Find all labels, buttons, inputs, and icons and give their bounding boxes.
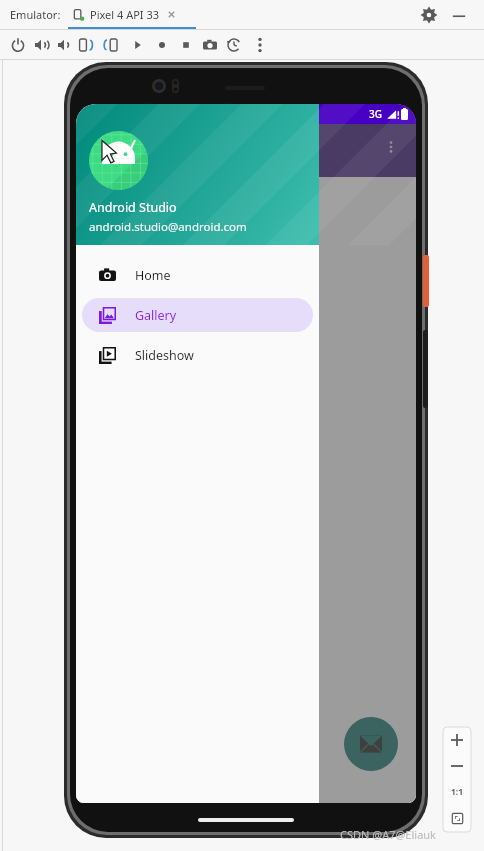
button[interactable]: Emulator control [8,35,28,55]
staticText: Gallery [135,307,177,324]
button[interactable]: Emulator control [176,35,196,55]
staticText: 3G [369,107,382,121]
other: Close tab [167,10,176,19]
button[interactable]: Emulator control [128,35,148,55]
button[interactable]: 1:1 [443,779,471,805]
button[interactable]: Emulator control [54,35,74,55]
button[interactable]: Minimize [448,4,470,26]
staticText: Home [135,267,171,284]
staticText: Emulator: [10,7,61,22]
staticText: 1:1 [451,786,464,798]
button[interactable]: Emulator control [76,35,96,55]
button[interactable]: Emulator control [224,35,244,55]
button[interactable]: Home [82,258,313,292]
button[interactable]: Settings [418,4,440,26]
button[interactable]: More options [376,132,406,162]
button[interactable]: Compose email [344,717,398,771]
staticText: android.studio@android.com [89,219,247,235]
button[interactable]: Emulator control [250,35,270,55]
button[interactable]: Emulator control [152,35,172,55]
staticText: Slideshow [135,347,194,364]
button[interactable]: Emulator control [101,35,121,55]
button[interactable]: Emulator control [31,35,51,55]
staticText: 11:16 [85,107,114,122]
button[interactable]: Fit to screen [443,805,471,831]
button[interactable]: Zoom out [443,753,471,779]
staticText: Android Studio [89,199,177,216]
button[interactable]: Slideshow [82,338,313,372]
staticText: CSDN @A7@Eliauk [340,827,436,842]
button[interactable]: Emulator control [200,35,220,55]
button[interactable]: Gallery [82,298,313,332]
button[interactable]: Zoom in [443,727,471,753]
staticText: Pixel 4 API 33 [90,7,160,22]
